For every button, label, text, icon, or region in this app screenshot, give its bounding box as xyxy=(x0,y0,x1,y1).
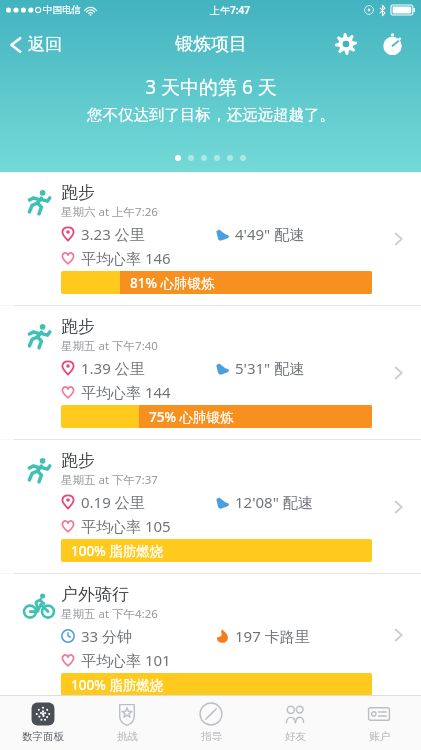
button[interactable]: Details xyxy=(385,494,411,520)
button[interactable]: 户外骑行 xyxy=(0,574,421,695)
staticText: 100% 脂肪燃烧 xyxy=(71,542,164,560)
staticText: 户外骑行 xyxy=(61,584,129,605)
button[interactable]: 跑步 xyxy=(0,306,421,439)
staticText: 5'31" 配速 xyxy=(235,358,305,378)
staticText: 账户 xyxy=(369,730,390,743)
button[interactable]: 跑步 xyxy=(0,440,421,573)
button[interactable]: Details xyxy=(385,226,411,252)
button[interactable]: 返回 xyxy=(0,28,72,61)
staticText: 锻炼项目 xyxy=(175,33,247,56)
staticText: 跑步 xyxy=(61,450,95,471)
button[interactable]: Settings xyxy=(329,27,363,61)
staticText: 4'49" 配速 xyxy=(235,224,305,244)
staticText: 平均心率 105 xyxy=(81,516,171,536)
button[interactable]: 账户 xyxy=(337,696,421,750)
staticText: 挑战 xyxy=(117,730,138,743)
button[interactable]: 好友 xyxy=(253,696,337,750)
staticText: 0.19 公里 xyxy=(81,492,145,512)
staticText: 中国电信 xyxy=(43,4,81,16)
staticText: 好友 xyxy=(285,730,306,743)
staticText: 3 天中的第 6 天 xyxy=(145,74,277,100)
staticText: 1.39 公里 xyxy=(81,358,145,378)
staticText: 197 卡路里 xyxy=(235,626,310,646)
staticText: 星期五 at 下午7:37 xyxy=(61,472,158,488)
staticText: 指导 xyxy=(201,730,222,743)
staticText: 12'08" 配速 xyxy=(235,492,313,512)
button[interactable]: 数字面板 xyxy=(0,696,85,750)
staticText: 100% 脂肪燃烧 xyxy=(71,676,164,694)
staticText: 平均心率 101 xyxy=(81,650,171,670)
staticText: 星期六 at 上午7:26 xyxy=(61,204,158,220)
staticText: 跑步 xyxy=(61,182,95,203)
staticText: 跑步 xyxy=(61,316,95,337)
staticText: 上午7:47 xyxy=(210,3,250,17)
staticText: 81% 心肺锻炼 xyxy=(130,274,215,292)
staticText: 返回 xyxy=(28,34,62,55)
staticText: 您不仅达到了目标，还远远超越了。 xyxy=(87,105,335,125)
staticText: 星期五 at 下午7:40 xyxy=(61,338,158,354)
button[interactable]: 指导 xyxy=(169,696,253,750)
staticText: 平均心率 144 xyxy=(81,382,171,402)
staticText: 平均心率 146 xyxy=(81,248,171,268)
staticText: 75% 心肺锻炼 xyxy=(149,408,234,426)
staticText: 33 分钟 xyxy=(81,626,133,646)
button[interactable]: 挑战 xyxy=(85,696,169,750)
staticText: 3.23 公里 xyxy=(81,224,145,244)
staticText: 星期五 at 下午4:26 xyxy=(61,606,158,622)
staticText: 数字面板 xyxy=(22,730,64,743)
button[interactable]: Details xyxy=(385,360,411,386)
button[interactable]: Stopwatch xyxy=(375,27,409,61)
button[interactable]: 跑步 xyxy=(0,172,421,305)
button[interactable]: Details xyxy=(385,622,411,648)
